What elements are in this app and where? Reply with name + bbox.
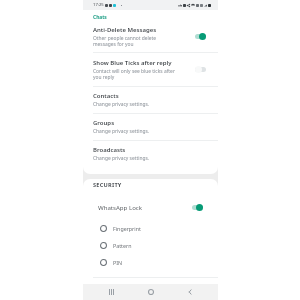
staticText: Chats	[93, 14, 107, 21]
staticText: SECURITY	[93, 181, 122, 189]
staticText: Contacts	[93, 92, 119, 100]
staticText: WhatsApp Lock	[98, 203, 192, 211]
staticText: Broadcasts	[93, 146, 126, 154]
staticText: PIN	[113, 259, 123, 266]
button[interactable]: Groups	[83, 114, 218, 140]
button[interactable]: Home	[145, 286, 157, 298]
staticText: Contact will only see blue ticks after y…	[93, 68, 175, 80]
button[interactable]: Anti-Delete Messages	[83, 21, 218, 52]
button[interactable]: PIN	[83, 254, 218, 271]
staticText: Fingerprint	[113, 225, 141, 232]
button[interactable]: Fingerprint	[83, 220, 218, 237]
staticText: 17:25	[93, 2, 104, 8]
staticText: Anti-Delete Messages	[93, 26, 157, 34]
button[interactable]: Pattern	[83, 237, 218, 254]
button[interactable]: WhatsApp Lock	[83, 201, 218, 213]
button[interactable]: Show Blue Ticks after reply	[83, 53, 218, 86]
staticText: Pattern	[113, 242, 132, 249]
staticText: Change privacy settings.	[93, 101, 150, 108]
staticText: Groups	[93, 119, 115, 127]
button[interactable]: Contacts	[83, 87, 218, 113]
staticText: Other people cannot delete messages for …	[93, 35, 157, 47]
staticText: Change privacy settings.	[93, 155, 150, 162]
button[interactable]: Recents	[105, 286, 117, 298]
button[interactable]: Back	[184, 286, 196, 298]
button[interactable]: Broadcasts	[83, 141, 218, 167]
staticText: Change privacy settings.	[93, 128, 150, 135]
staticText: Show Blue Ticks after reply	[93, 59, 172, 67]
